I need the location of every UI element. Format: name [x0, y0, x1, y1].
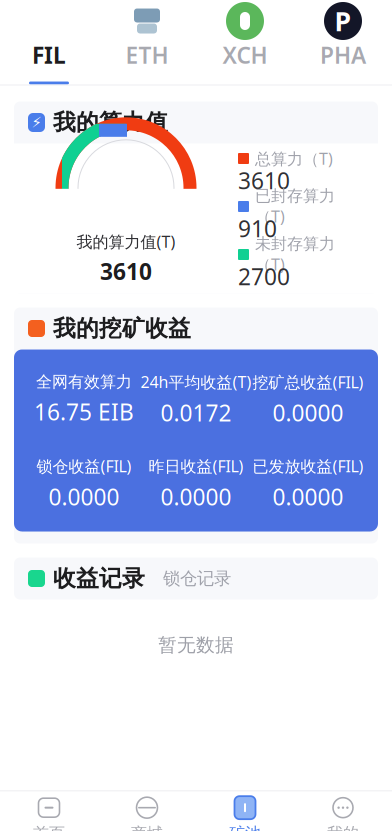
staticText: 24h平均收益(T): [140, 371, 251, 393]
staticText: 锁仓收益(FIL): [36, 455, 131, 476]
staticText: 0.0000: [272, 398, 343, 428]
staticText: PHA: [320, 40, 366, 70]
staticText: ⚡︎: [31, 114, 41, 131]
staticText: 已封存算力（T): [255, 186, 335, 227]
staticText: 总算力（T): [255, 148, 333, 169]
staticText: P: [334, 3, 351, 39]
staticText: 全网有效算力: [36, 372, 132, 392]
button[interactable]: XCH: [196, 0, 294, 84]
staticText: 暂无数据: [158, 633, 234, 656]
staticText: 挖矿总收益(FIL): [252, 371, 363, 392]
button[interactable]: 我的: [294, 791, 392, 831]
staticText: 我的挖矿收益: [53, 315, 191, 342]
staticText: 3610: [238, 165, 290, 195]
staticText: 未封存算力（T): [255, 234, 335, 275]
staticText: 我的算力值(T): [76, 231, 175, 252]
staticText: 矿池: [229, 824, 261, 831]
staticText: 2700: [238, 261, 290, 291]
staticText: 收益记录: [53, 565, 145, 592]
staticText: 0.0000: [272, 482, 343, 512]
staticText: 我的: [327, 824, 359, 831]
staticText: 16.75 EIB: [34, 397, 134, 427]
staticText: 已发放收益(FIL): [252, 455, 363, 476]
staticText: 0.0000: [160, 482, 231, 512]
staticText: FIL: [32, 40, 66, 70]
button[interactable]: ETH: [98, 0, 196, 84]
staticText: ETH: [125, 40, 168, 70]
staticText: 3610: [100, 256, 152, 286]
staticText: 昨日收益(FIL): [148, 455, 243, 476]
button[interactable]: 收益记录: [45, 565, 145, 592]
staticText: 锁仓记录: [163, 568, 231, 589]
button[interactable]: FIL: [0, 0, 98, 84]
staticText: 910: [238, 213, 277, 243]
staticText: 首页: [33, 824, 65, 831]
button[interactable]: P: [294, 0, 392, 84]
button[interactable]: 首页: [0, 791, 98, 831]
staticText: 我的算力值: [53, 109, 168, 136]
staticText: 商城: [131, 824, 163, 831]
staticText: 0.0172: [160, 398, 231, 428]
button[interactable]: 商城: [98, 791, 196, 831]
button[interactable]: 锁仓记录: [145, 568, 231, 589]
button[interactable]: 矿池: [196, 791, 294, 831]
staticText: XCH: [222, 40, 267, 70]
staticText: 0.0000: [48, 482, 119, 512]
